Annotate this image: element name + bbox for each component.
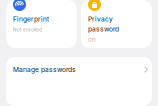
- staticText: Privacy: [88, 15, 113, 23]
- button[interactable]: Manage passwords: [6, 57, 152, 106]
- staticText: Manage passwords: [13, 65, 76, 74]
- button[interactable]: Fingerprint: [6, 0, 77, 48]
- staticText: Fingerprint: [13, 15, 49, 23]
- staticText: Not enrolled: [13, 27, 42, 33]
- button[interactable]: Privacy: [81, 0, 152, 48]
- staticText: Off: [88, 37, 96, 43]
- staticText: password: [88, 25, 119, 33]
